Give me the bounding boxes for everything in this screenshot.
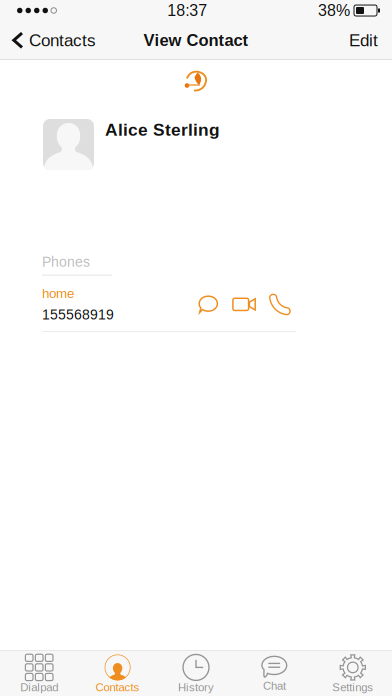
staticText: Contacts: [96, 681, 140, 694]
staticText: View Contact: [143, 31, 248, 49]
button[interactable]: Chat: [235, 652, 314, 695]
staticText: Chat: [263, 679, 286, 692]
button[interactable]: Call: [268, 294, 291, 315]
button[interactable]: Contacts: [0, 22, 96, 59]
staticText: Alice Sterling: [105, 120, 220, 139]
button[interactable]: Settings: [314, 651, 392, 696]
button[interactable]: Video call: [232, 297, 256, 311]
staticText: 18:37: [167, 2, 207, 19]
staticText: home: [42, 286, 74, 301]
button[interactable]: Contacts: [78, 651, 157, 696]
staticText: History: [178, 681, 214, 694]
staticText: Phones: [42, 254, 90, 270]
staticText: 38%: [318, 2, 350, 19]
button[interactable]: Dialpad: [0, 651, 78, 696]
staticText: Settings: [332, 681, 373, 694]
button[interactable]: Edit: [333, 22, 392, 59]
staticText: Edit: [349, 31, 378, 50]
staticText: Dialpad: [20, 681, 58, 694]
button[interactable]: Message: [198, 295, 220, 313]
button[interactable]: History: [157, 651, 235, 696]
staticText: Contacts: [29, 31, 96, 50]
staticText: 155568919: [42, 307, 114, 322]
